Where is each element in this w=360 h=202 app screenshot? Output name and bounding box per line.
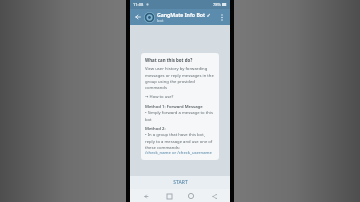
button[interactable]: Share [208, 190, 220, 202]
staticText: Method 1: Forward Message [145, 104, 203, 110]
staticText: What can this bot do? [145, 57, 193, 63]
staticText: START [173, 179, 188, 186]
staticText: • In a group that have this bot, reply t… [145, 132, 215, 150]
staticText: → How to use? [145, 94, 174, 100]
staticText: View user history by forwarding messages… [145, 66, 215, 90]
button[interactable]: Home [185, 190, 197, 202]
button[interactable]: START [130, 176, 230, 189]
staticText: 11:08 [133, 2, 144, 7]
button[interactable]: What can this bot do? [141, 53, 219, 160]
button[interactable]: More options [217, 12, 227, 22]
button[interactable]: Recent apps [163, 190, 175, 202]
staticText: Method 2: [145, 126, 166, 132]
staticText: GangMate Info Bot ✓ [157, 11, 211, 18]
staticText: 78% [213, 2, 221, 7]
button[interactable]: Back [140, 190, 152, 202]
staticText: bot [157, 18, 164, 23]
button[interactable]: GangMate Info Bot ✓ [157, 11, 217, 23]
button[interactable]: /check_name or /check_username [145, 150, 212, 156]
button[interactable]: Back [133, 12, 143, 22]
staticText: • Simply forward a message to this bot [145, 110, 215, 122]
